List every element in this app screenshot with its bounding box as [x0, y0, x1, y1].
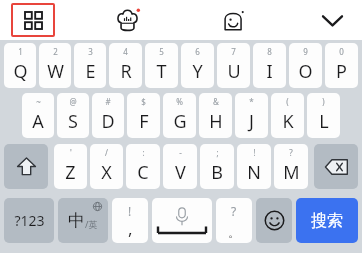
button[interactable]: 3 — [74, 43, 106, 88]
button[interactable]: 0 — [325, 43, 358, 88]
button[interactable]: 4 — [109, 43, 142, 88]
staticText: A — [32, 109, 44, 134]
button[interactable]: ?123 — [4, 198, 54, 243]
staticText: 中 — [68, 210, 85, 231]
staticText: 搜索 — [311, 211, 343, 231]
button[interactable]: Shift — [4, 144, 48, 189]
staticText: G — [173, 109, 187, 134]
staticText: O — [298, 59, 313, 84]
staticText: R — [120, 59, 132, 84]
button[interactable]: ) — [307, 93, 340, 138]
staticText: : — [142, 147, 145, 158]
staticText: * — [249, 96, 254, 107]
staticText: ; — [216, 147, 219, 158]
staticText: Z — [65, 160, 76, 185]
staticText: Q — [13, 59, 28, 84]
staticText: ! — [253, 147, 256, 158]
staticText: M — [283, 160, 300, 185]
staticText: 0 — [339, 46, 344, 57]
staticText: ) — [322, 96, 325, 107]
button[interactable]: ? — [274, 144, 308, 189]
button[interactable]: & — [199, 93, 232, 138]
button[interactable]: ! — [237, 144, 271, 189]
staticText: 6 — [195, 46, 200, 57]
button[interactable]: * — [235, 93, 268, 138]
button[interactable]: 9 — [289, 43, 322, 88]
button[interactable]: 8 — [253, 43, 286, 88]
button[interactable]: 6 — [181, 43, 214, 88]
button[interactable]: ' — [54, 144, 87, 189]
staticText: H — [209, 109, 223, 134]
staticText: ? — [231, 203, 237, 219]
staticText: ! — [128, 203, 132, 219]
button[interactable]: / — [90, 144, 123, 189]
button[interactable]: @ — [57, 93, 89, 138]
button[interactable]: Switch language — [58, 198, 108, 243]
staticText: V — [175, 160, 186, 185]
staticText: ' — [70, 147, 72, 158]
staticText: N — [247, 160, 261, 185]
staticText: 7 — [231, 46, 236, 57]
button[interactable]: % — [163, 93, 196, 138]
staticText: 8 — [267, 46, 272, 57]
staticText: F — [139, 109, 149, 134]
staticText: K — [282, 109, 294, 134]
staticText: 1 — [18, 46, 23, 57]
staticText: ~ — [36, 96, 41, 107]
staticText: % — [176, 96, 183, 107]
staticText: E — [85, 59, 96, 84]
button[interactable]: : — [126, 144, 160, 189]
staticText: , — [128, 217, 133, 240]
staticText: 4 — [123, 46, 128, 57]
button[interactable]: 搜索 — [296, 198, 358, 243]
staticText: @ — [69, 96, 77, 107]
button[interactable]: 2 — [39, 43, 71, 88]
button[interactable]: 5 — [145, 43, 178, 88]
staticText: 3 — [88, 46, 93, 57]
staticText: 5 — [159, 46, 164, 57]
staticText: - — [179, 147, 182, 158]
staticText: 9 — [303, 46, 308, 57]
staticText: ( — [286, 96, 289, 107]
button[interactable]: Hide keyboard — [314, 2, 350, 38]
staticText: Y — [192, 59, 203, 84]
button[interactable]: Space — [152, 198, 212, 243]
staticText: 。 — [228, 225, 240, 240]
staticText: W — [47, 59, 64, 84]
button[interactable]: $ — [127, 93, 160, 138]
staticText: # — [105, 96, 111, 107]
staticText: P — [336, 59, 347, 84]
staticText: /英 — [85, 218, 98, 230]
staticText: ? — [289, 147, 293, 158]
staticText: T — [156, 59, 167, 84]
staticText: X — [101, 160, 112, 185]
button[interactable]: ; — [200, 144, 234, 189]
staticText: D — [101, 109, 115, 134]
staticText: I — [266, 59, 273, 84]
staticText: U — [227, 59, 241, 84]
button[interactable]: 7 — [217, 43, 250, 88]
button[interactable]: Comma — [112, 198, 148, 243]
staticText: L — [319, 109, 329, 134]
button[interactable]: # — [92, 93, 124, 138]
staticText: $ — [141, 96, 146, 107]
button[interactable]: - — [163, 144, 197, 189]
staticText: S — [68, 109, 78, 134]
staticText: / — [105, 147, 108, 158]
button[interactable]: Skins — [109, 2, 145, 38]
button[interactable]: Emoji — [256, 198, 292, 243]
staticText: & — [213, 96, 219, 107]
staticText: 2 — [53, 46, 58, 57]
button[interactable]: Keyboard panels — [11, 3, 55, 37]
staticText: B — [211, 160, 223, 185]
button[interactable]: ~ — [22, 93, 54, 138]
staticText: J — [249, 109, 254, 134]
button[interactable]: Period — [216, 198, 252, 243]
button[interactable]: 1 — [4, 43, 36, 88]
button[interactable]: Backspace — [314, 144, 358, 189]
button[interactable]: Stickers — [215, 2, 251, 38]
staticText: C — [137, 160, 149, 185]
button[interactable]: ( — [271, 93, 304, 138]
staticText: ?123 — [14, 211, 45, 230]
